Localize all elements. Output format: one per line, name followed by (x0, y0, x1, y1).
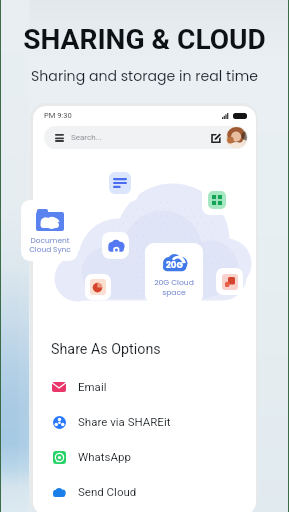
button[interactable]: Compose (206, 128, 225, 147)
staticText: 20G Cloud space (154, 277, 194, 298)
staticText: 20G (166, 259, 183, 271)
staticText: WhatsApp (78, 450, 131, 463)
button[interactable]: Presentation (85, 274, 111, 300)
button[interactable]: Spreadsheet (202, 185, 232, 215)
button[interactable]: Profile (226, 127, 247, 148)
button[interactable]: Email (33, 369, 256, 404)
staticText: Search... (71, 133, 102, 142)
button[interactable]: 20G (145, 243, 203, 304)
button[interactable]: Document (101, 164, 139, 202)
staticText: Share via SHAREit (78, 415, 171, 428)
button[interactable]: Search... (44, 126, 206, 149)
staticText: Email (78, 380, 107, 393)
button[interactable]: Slides (216, 268, 243, 295)
button[interactable]: Document Cloud Sync (21, 200, 78, 261)
button[interactable]: Share via SHAREit (33, 404, 256, 439)
button[interactable]: WhatsApp (33, 439, 256, 474)
staticText: Share As Options (51, 341, 161, 358)
staticText: Send Cloud (78, 485, 137, 498)
button[interactable]: Cloud settings (102, 232, 129, 259)
staticText: Document Cloud Sync (29, 235, 71, 255)
staticText: Sharing and storage in real time (0, 66, 289, 86)
staticText: SHARING & CLOUD (0, 23, 289, 56)
button[interactable]: Send Cloud (33, 474, 256, 509)
staticText: PM 9:30 (44, 111, 72, 120)
